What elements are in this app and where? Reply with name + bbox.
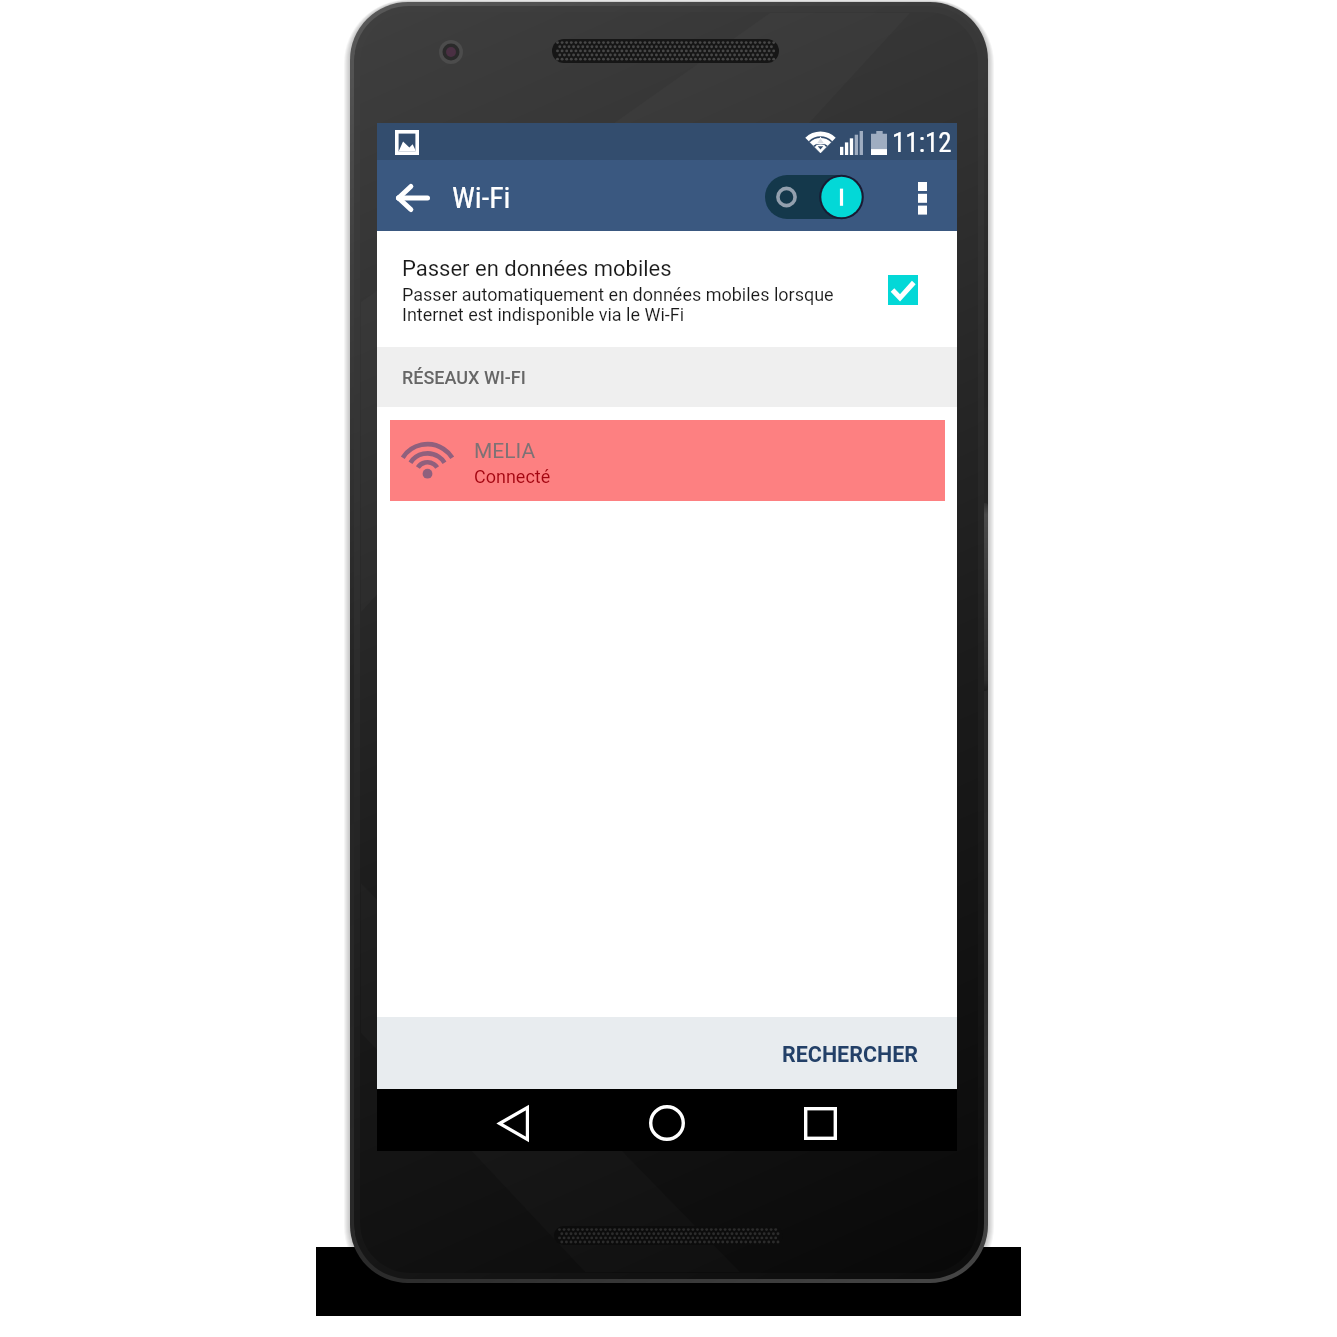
button[interactable]: More options [895, 171, 950, 225]
button[interactable]: Back [486, 1096, 540, 1150]
button[interactable]: MELIA [390, 420, 945, 501]
button[interactable]: Recent apps [793, 1096, 847, 1150]
button[interactable]: Passer en données mobiles [377, 231, 957, 347]
button[interactable]: Turn Wi-Fi off [765, 175, 863, 219]
staticText: Passer en données mobiles [402, 256, 672, 282]
staticText: MELIA [474, 439, 536, 464]
staticText: Wi-Fi [452, 180, 511, 215]
staticText: Internet est indisponible via le Wi-Fi [402, 304, 685, 325]
staticText: Passer automatiquement en données mobile… [402, 284, 834, 305]
staticText: 11:12 [892, 127, 952, 159]
button[interactable]: Switch to mobile data [888, 275, 918, 305]
button[interactable]: Home [640, 1096, 694, 1150]
staticText: Connecté [474, 466, 551, 487]
button[interactable]: Navigate up [389, 170, 435, 225]
staticText: RÉSEAUX WI-FI [402, 367, 526, 388]
button[interactable]: RECHERCHER [377, 1017, 957, 1089]
staticText: RECHERCHER [782, 1042, 919, 1067]
